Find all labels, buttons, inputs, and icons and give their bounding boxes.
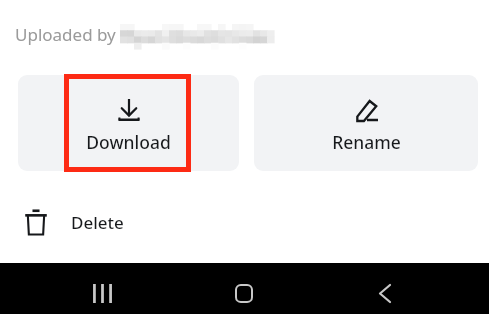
button[interactable]: Delete [0,196,489,248]
button[interactable]: Recents [32,272,173,314]
button[interactable]: Home [173,272,314,314]
other: Delete [25,209,47,236]
button[interactable]: Download [18,75,239,171]
button[interactable]: Rename [254,75,478,171]
staticText: Delete [71,211,124,234]
staticText: Download [86,130,171,154]
staticText: Rename [332,130,401,154]
button[interactable]: Back [314,272,455,314]
staticText: Uploaded by [15,23,116,46]
